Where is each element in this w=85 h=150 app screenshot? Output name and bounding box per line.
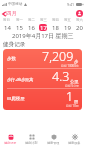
staticText: 步数 [7, 56, 16, 62]
button[interactable]: 周二 [25, 18, 37, 31]
staticText: 周六 [76, 18, 83, 22]
staticText: 19 [64, 24, 71, 31]
button[interactable]: 周一 [13, 18, 25, 31]
button[interactable]: 健康设备 [64, 134, 85, 145]
staticText: 健康设备 [68, 141, 81, 145]
staticText: 中国移动 [8, 2, 23, 7]
button[interactable]: 周六 [73, 18, 85, 31]
button[interactable]: 周日 [0, 18, 13, 31]
staticText: 已爬楼层 [7, 96, 25, 102]
staticText: 16 [28, 24, 35, 31]
staticText: 健康管理 [47, 141, 60, 145]
staticText: 周日 [3, 18, 10, 22]
button[interactable]: 健康管理 [43, 134, 64, 145]
staticText: 步 [74, 59, 79, 64]
staticText: 9:41 [67, 2, 75, 7]
staticText: 17 [40, 24, 47, 31]
staticText: 目标 10层 [66, 104, 79, 107]
staticText: 4.3 [52, 68, 70, 85]
button[interactable]: 周五 [61, 18, 73, 31]
button[interactable]: 周三 [37, 18, 49, 31]
button[interactable]: 步数 [3, 49, 82, 110]
staticText: 1 [66, 88, 74, 105]
staticText: 周四 [52, 18, 59, 22]
staticText: 周五 [64, 18, 71, 22]
staticText: 健身记录 [3, 41, 26, 48]
button[interactable]: 健身计划 [21, 134, 42, 145]
button[interactable]: Profile [76, 10, 83, 17]
staticText: 四月 [6, 10, 17, 17]
staticText: 14 [4, 24, 11, 31]
button[interactable]: 四月 [1, 10, 18, 17]
staticText: 18 [52, 24, 59, 31]
staticText: 层 [74, 99, 79, 104]
button[interactable]: 健身记录 [0, 134, 21, 145]
staticText: 健身计划 [25, 141, 38, 145]
staticText: 7,209 [42, 49, 74, 65]
staticText: 2019年4月17日 星期三 [12, 32, 74, 40]
staticText: 目标 10000步 [61, 64, 79, 67]
staticText: 20 [76, 24, 83, 31]
staticText: 目标 5公里 [65, 84, 79, 87]
staticText: 周三 [40, 18, 47, 22]
staticText: 15 [16, 24, 23, 31]
staticText: 健身记录 [4, 141, 17, 145]
staticText: 步行+跑步距离 [7, 77, 34, 82]
staticText: 公里 [70, 79, 79, 84]
button[interactable]: 周四 [49, 18, 61, 31]
staticText: 周二 [28, 18, 35, 22]
staticText: 周一 [16, 18, 23, 22]
